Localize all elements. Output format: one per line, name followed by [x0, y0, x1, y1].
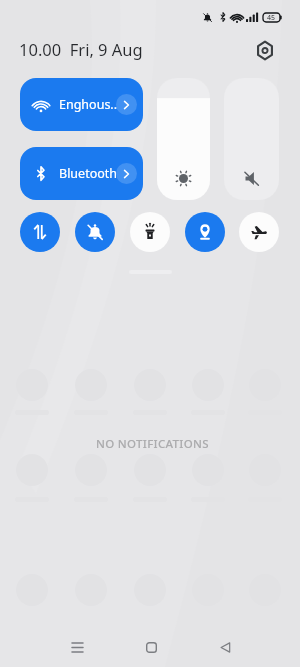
button[interactable]: Flashlight [130, 212, 170, 252]
button[interactable] [157, 78, 210, 200]
staticText: 45 [267, 13, 276, 22]
staticText: Enghous.. [59, 96, 118, 113]
button[interactable]: Recents [57, 627, 98, 667]
button[interactable]: Silent mode [75, 212, 115, 252]
button[interactable] [224, 78, 279, 200]
button[interactable]: Mobile data [20, 212, 60, 252]
staticText: 10.00 Fri, 9 Aug [19, 38, 143, 60]
staticText: NO NOTIFICATIONS [96, 436, 209, 452]
button[interactable]: Back [205, 627, 246, 667]
button[interactable]: Home [131, 627, 172, 667]
button[interactable]: Settings [249, 34, 281, 66]
button[interactable]: Airplane mode [239, 212, 279, 252]
button[interactable]: Enghous.. [20, 78, 143, 131]
staticText: Bluetooth [59, 165, 118, 182]
button[interactable]: Location [185, 212, 225, 252]
button[interactable]: Bluetooth [20, 147, 143, 200]
